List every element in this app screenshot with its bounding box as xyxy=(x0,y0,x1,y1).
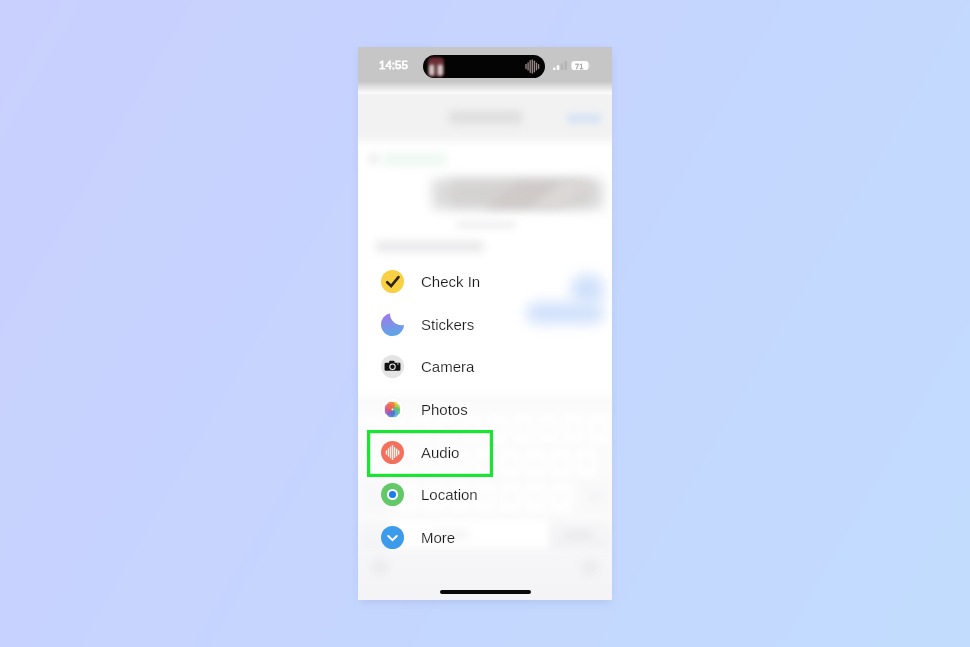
staticText: More xyxy=(421,529,456,546)
button[interactable]: Check In xyxy=(358,260,612,303)
button[interactable]: More xyxy=(358,516,612,559)
staticText: Stickers xyxy=(421,316,475,333)
staticText: Photos xyxy=(421,401,468,418)
button[interactable]: Audio xyxy=(358,431,612,474)
staticText: 71 xyxy=(575,62,584,70)
staticText: Camera xyxy=(421,358,475,375)
staticText: Check In xyxy=(421,273,481,290)
staticText: Audio xyxy=(421,444,460,461)
staticText: 14:55 xyxy=(379,59,408,72)
button[interactable]: Location xyxy=(358,473,612,516)
button[interactable]: Camera xyxy=(358,345,612,388)
staticText: Location xyxy=(421,486,478,503)
button[interactable]: Stickers xyxy=(358,303,612,346)
button[interactable]: Photos xyxy=(358,388,612,431)
